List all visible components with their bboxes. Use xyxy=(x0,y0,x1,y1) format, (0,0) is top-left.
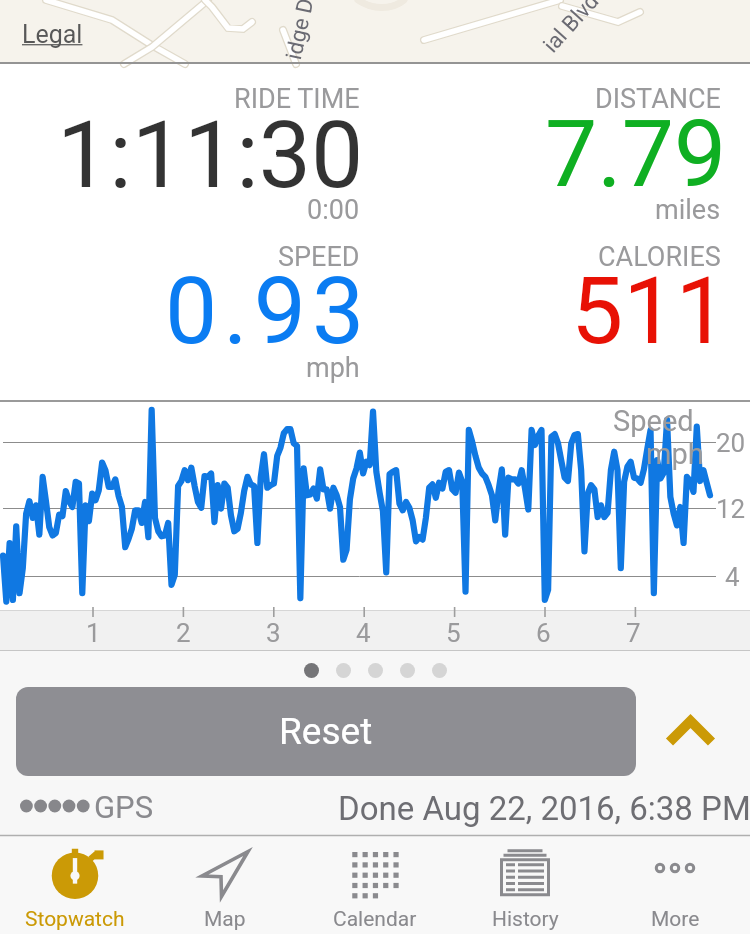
staticText: DISTANCE xyxy=(595,83,721,115)
staticText: 511 xyxy=(571,257,728,366)
staticText: History xyxy=(492,907,559,932)
staticText: SPEED xyxy=(278,241,360,273)
staticText: mph xyxy=(306,352,360,384)
staticText: CALORIES xyxy=(598,241,721,273)
staticText: 7 xyxy=(626,618,641,648)
staticText: 0.93 xyxy=(165,257,371,366)
staticText: 4 xyxy=(356,618,371,648)
staticText: 20 xyxy=(716,428,746,458)
staticText: Speed xyxy=(613,404,694,438)
staticText: Done Aug 22, 2016, 6:38 PM xyxy=(338,789,750,828)
staticText: More xyxy=(651,907,700,932)
button[interactable]: Collapse panel xyxy=(655,706,725,754)
staticText: 4 xyxy=(725,562,740,592)
staticText: Map xyxy=(204,907,246,932)
staticText: ial Blvd xyxy=(538,0,605,58)
staticText: 7.79 xyxy=(545,100,727,209)
staticText: 1:11:30 xyxy=(57,101,364,210)
staticText: mph xyxy=(646,437,704,471)
staticText: 12 xyxy=(716,494,746,524)
staticText: RIDE TIME xyxy=(234,83,360,115)
button[interactable]: Stopwatch xyxy=(0,835,150,934)
staticText: 6 xyxy=(536,618,551,648)
staticText: 0:00 xyxy=(307,194,360,226)
staticText: miles xyxy=(655,194,721,226)
staticText: Legal xyxy=(22,20,83,49)
staticText: Calendar xyxy=(333,907,417,932)
button[interactable]: Calendar xyxy=(300,835,450,934)
button[interactable]: More xyxy=(600,835,750,934)
staticText: Stopwatch xyxy=(25,907,125,932)
button[interactable]: Map xyxy=(150,835,300,934)
staticText: 3 xyxy=(266,618,281,648)
button[interactable]: History xyxy=(450,835,600,934)
staticText: GPS xyxy=(94,789,154,825)
staticText: 1 xyxy=(86,618,101,648)
staticText: idge Dr xyxy=(281,0,321,62)
staticText: Reset xyxy=(279,710,373,753)
staticText: 2 xyxy=(176,618,191,648)
button[interactable]: Reset xyxy=(16,687,636,776)
staticText: 5 xyxy=(446,618,461,648)
